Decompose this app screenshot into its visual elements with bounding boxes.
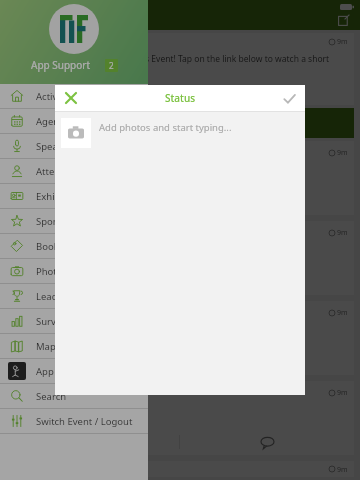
button[interactable]: Compose post — [336, 12, 352, 28]
staticText: 9m — [337, 37, 348, 47]
button[interactable] — [6, 108, 354, 138]
staticText: Status — [165, 91, 196, 105]
button[interactable]: Bookmarks — [0, 234, 148, 258]
staticText: Add photos and start typing... — [99, 121, 232, 134]
staticText: Exhibitors — [36, 190, 81, 203]
button[interactable]: Agenda — [0, 109, 148, 133]
staticText: App Support — [33, 388, 83, 399]
staticText: Photos — [36, 265, 68, 278]
button[interactable]: Exhibitors — [0, 184, 148, 208]
button[interactable]: App Support — [6, 301, 354, 375]
button[interactable]: Promoted Post — [6, 33, 354, 105]
staticText: Map — [36, 340, 56, 353]
button[interactable]: App Support — [6, 141, 354, 215]
staticText: App Support — [36, 365, 93, 378]
button[interactable]: Map — [0, 334, 148, 358]
button[interactable]: Close — [61, 88, 81, 108]
staticText: App Support — [33, 308, 83, 319]
staticText: App Support — [33, 228, 83, 239]
staticText: Agenda — [36, 115, 71, 128]
staticText: 9m — [337, 308, 348, 318]
staticText: 9m — [337, 228, 348, 238]
button[interactable]: App Support — [6, 461, 354, 477]
staticText: App Support — [33, 148, 83, 159]
staticText: Activity — [36, 90, 69, 103]
button[interactable]: Sponsors — [0, 209, 148, 233]
staticText: 9m — [337, 388, 348, 398]
button[interactable]: Add photo — [61, 118, 91, 148]
button[interactable]: Switch Event / Logout — [0, 409, 148, 433]
staticText: Surveys — [36, 315, 71, 328]
staticText: Bookmarks — [36, 240, 87, 253]
staticText: 2 — [109, 60, 114, 71]
button[interactable]: Surveys — [0, 309, 148, 333]
button[interactable]: Leaderboard — [0, 284, 148, 308]
staticText: Search — [36, 390, 67, 403]
staticText: Attendees — [36, 165, 82, 178]
button[interactable]: Activity — [0, 84, 148, 108]
staticText: 9m — [337, 465, 348, 473]
button[interactable]: App Support — [6, 221, 354, 295]
staticText: 9m — [337, 148, 348, 158]
button[interactable]: Speakers — [0, 134, 148, 158]
staticText: Promoted Post — [12, 37, 61, 47]
button[interactable]: Post status — [279, 88, 299, 108]
staticText: Leaderboard — [36, 290, 94, 303]
button[interactable]: Search — [0, 384, 148, 408]
button[interactable]: App Support — [6, 381, 354, 455]
staticText: Welcome to the app for this year's Event… — [13, 53, 347, 77]
button[interactable]: App Support — [0, 359, 148, 383]
staticText: Switch Event / Logout — [36, 415, 133, 428]
staticText: Speakers — [36, 140, 77, 153]
staticText: App Support — [31, 58, 91, 72]
staticText: Sponsors — [36, 215, 78, 228]
button[interactable]: Attendees — [0, 159, 148, 183]
button[interactable]: Photos — [0, 259, 148, 283]
